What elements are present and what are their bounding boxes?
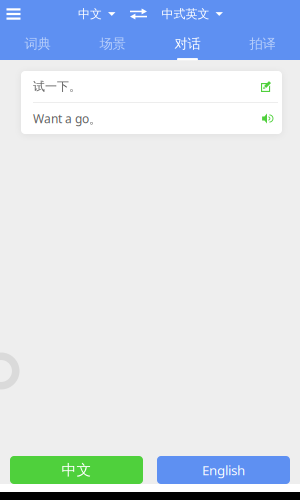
button[interactable]: 试一下。 — [21, 71, 282, 102]
button[interactable]: Swap languages — [120, 0, 156, 28]
staticText: 场景 — [99, 36, 125, 52]
staticText: 中文 — [61, 461, 91, 479]
button[interactable]: Want a go。 — [21, 103, 282, 134]
button[interactable]: 对话 — [150, 28, 225, 60]
staticText: Want a go。 — [33, 110, 101, 126]
staticText: 拍译 — [249, 36, 275, 52]
staticText: 试一下。 — [33, 79, 81, 94]
staticText: 中式英文 — [161, 7, 209, 21]
button[interactable]: 拍译 — [225, 28, 300, 60]
button[interactable]: 中式英文 — [156, 0, 228, 28]
button[interactable]: Menu — [0, 0, 27, 28]
staticText: English — [202, 461, 245, 479]
staticText: 词典 — [24, 36, 50, 52]
button[interactable]: 词典 — [0, 28, 75, 60]
button[interactable]: 中文 — [10, 456, 143, 484]
button[interactable]: 场景 — [75, 28, 150, 60]
staticText: 对话 — [174, 36, 200, 52]
button[interactable]: 中文 — [73, 0, 120, 28]
staticText: 中文 — [78, 7, 102, 21]
button[interactable]: English — [157, 456, 290, 484]
